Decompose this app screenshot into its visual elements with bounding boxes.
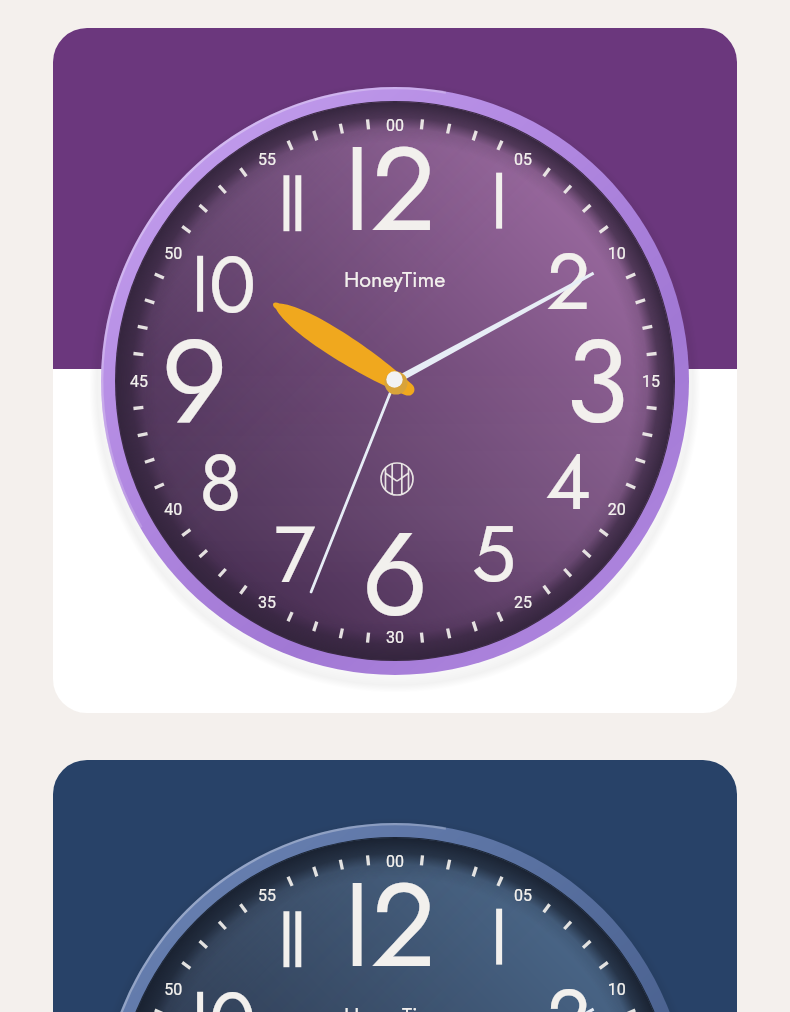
button[interactable]	[0, 0, 790, 1012]
